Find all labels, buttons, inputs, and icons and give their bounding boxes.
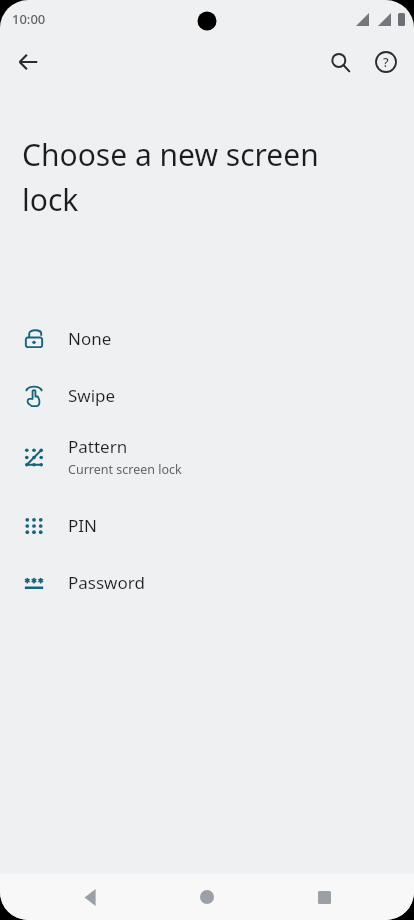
button[interactable]: Recents [300,874,348,920]
staticText: Current screen lock [68,461,182,478]
button[interactable]: Pattern [0,425,414,488]
button[interactable]: Swipe [0,367,414,424]
button[interactable]: Back [8,42,48,82]
staticText: ? [383,54,389,71]
button[interactable]: Help [366,42,406,82]
button[interactable]: None [0,310,414,367]
button[interactable]: PIN [0,497,414,554]
staticText: Password [68,571,145,594]
button[interactable]: Home [183,874,231,920]
button[interactable]: Back [66,874,114,920]
button[interactable]: Search [320,42,360,82]
staticText: Choose a new screen lock [22,134,319,220]
staticText: PIN [68,514,97,537]
staticText: Swipe [68,384,116,407]
staticText: Pattern [68,435,128,458]
button[interactable]: Password [0,554,414,611]
staticText: 10:00 [12,10,46,28]
staticText: None [68,327,112,350]
